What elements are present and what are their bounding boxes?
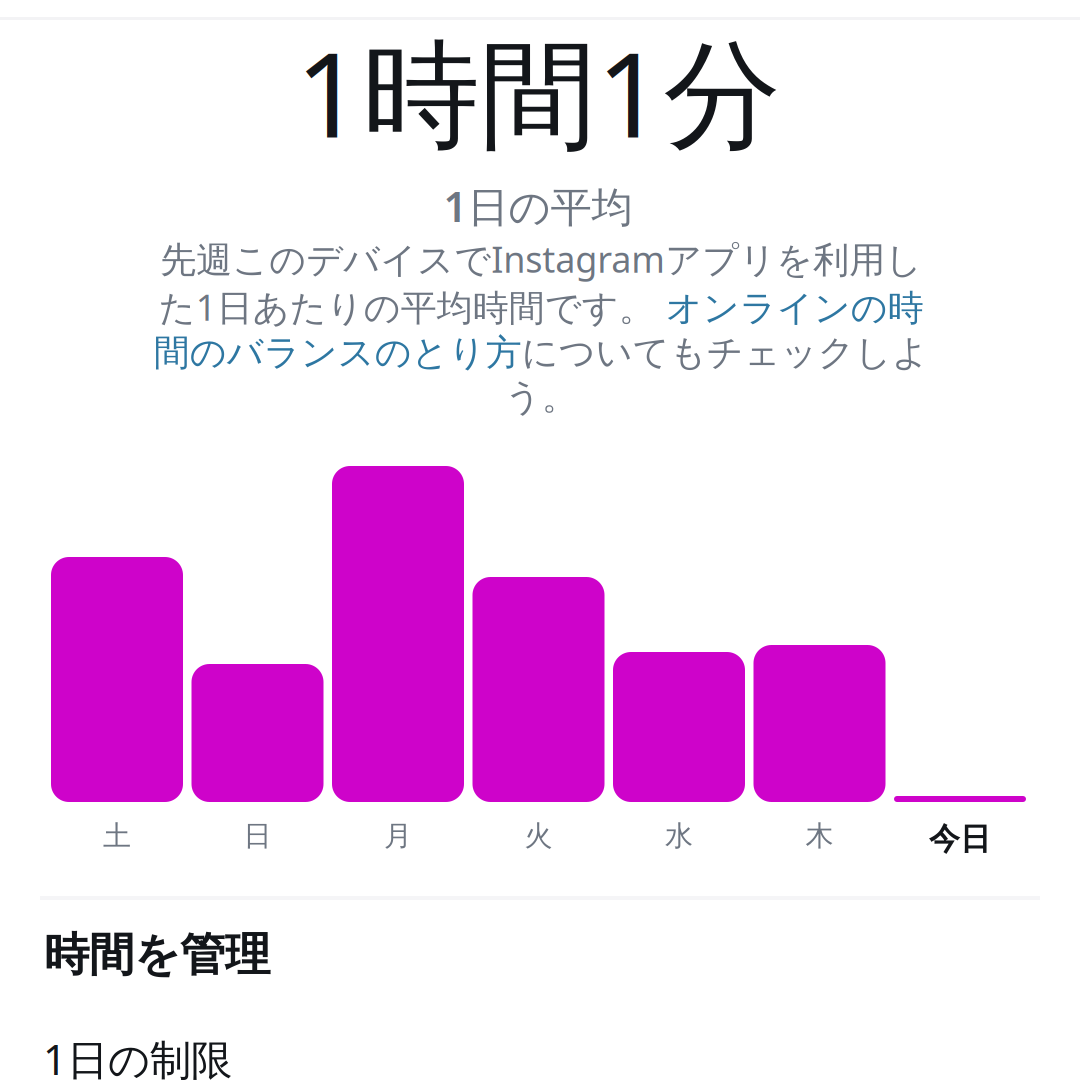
staticText: 火 xyxy=(524,819,552,853)
staticText: 日 xyxy=(243,819,271,853)
staticText: 1時間1分 xyxy=(295,14,780,170)
staticText: 先週このデバイスでInstagramアプリを利用した1日あたりの平均時間です。 … xyxy=(153,235,928,419)
staticText: 水 xyxy=(665,819,693,853)
staticText: 月 xyxy=(384,819,412,853)
button[interactable]: 今日 xyxy=(0,0,1080,1080)
staticText: 土 xyxy=(103,819,131,853)
staticText: 時間を管理 xyxy=(44,927,270,983)
button[interactable]: 土 xyxy=(0,0,1080,1080)
staticText: 木 xyxy=(805,819,833,853)
button[interactable]: 日 xyxy=(0,0,1080,1080)
staticText: 今日 xyxy=(929,820,991,858)
button[interactable]: 水 xyxy=(0,0,1080,1080)
button[interactable]: 月 xyxy=(0,0,1080,1080)
button[interactable]: 先週このデバイスでInstagramアプリを利用した1日あたりの平均時間です。 … xyxy=(150,235,932,419)
button[interactable]: 木 xyxy=(0,0,1080,1080)
staticText: 1日の平均 xyxy=(443,179,632,233)
button[interactable]: 火 xyxy=(0,0,1080,1080)
button[interactable]: 1日の制限 xyxy=(43,1016,1039,1080)
staticText: 1日の制限 xyxy=(43,1032,232,1080)
